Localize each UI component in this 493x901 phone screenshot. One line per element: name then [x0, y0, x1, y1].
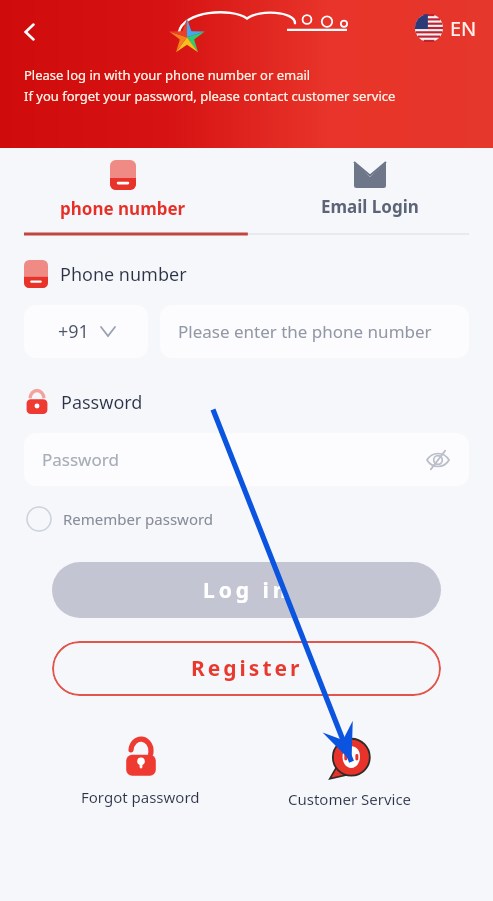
staticText: Please log in with your phone number or …: [24, 66, 311, 84]
staticText: Log in: [203, 576, 291, 605]
button[interactable]: Show password: [421, 443, 455, 477]
button[interactable]: EN: [411, 10, 481, 46]
button[interactable]: phone number: [0, 148, 246, 238]
button[interactable]: Forgot password: [73, 729, 208, 815]
staticText: Phone number: [60, 262, 187, 287]
button[interactable]: Customer Service: [280, 729, 420, 817]
staticText: Remember password: [63, 509, 214, 529]
button[interactable]: Password: [24, 433, 469, 486]
staticText: Password: [42, 448, 119, 471]
staticText: Customer Service: [288, 789, 412, 809]
button[interactable]: Register: [52, 641, 441, 696]
button[interactable]: +91: [24, 305, 148, 358]
staticText: Please enter the phone number: [178, 320, 432, 343]
button[interactable]: Please enter the phone number: [160, 305, 469, 358]
staticText: EN: [450, 15, 477, 42]
staticText: Password: [61, 390, 143, 415]
staticText: phone number: [60, 197, 186, 220]
button[interactable]: Back: [8, 10, 52, 54]
button[interactable]: Log in: [52, 562, 441, 618]
staticText: Email Login: [321, 195, 419, 218]
staticText: If you forget your password, please cont…: [24, 87, 396, 105]
button[interactable]: Remember password: [24, 502, 216, 536]
staticText: Forgot password: [81, 787, 200, 807]
button[interactable]: Email Login: [246, 148, 493, 238]
staticText: Register: [191, 654, 303, 683]
staticText: +91: [58, 319, 89, 344]
